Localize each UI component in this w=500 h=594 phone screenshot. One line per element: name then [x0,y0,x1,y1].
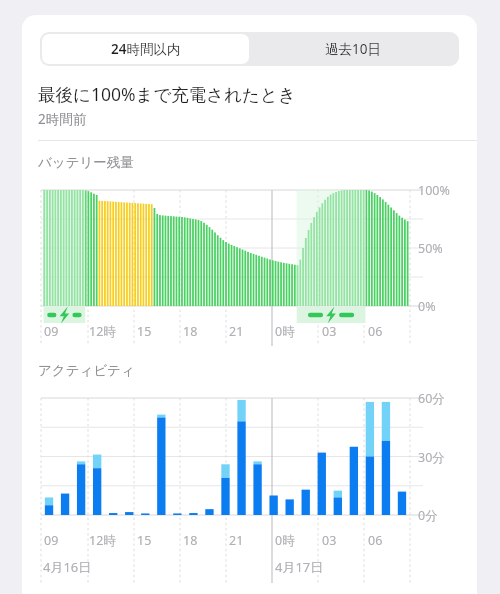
staticText: 最後に100%まで充電されたとき [38,82,296,106]
staticText: 60分 [418,390,445,407]
staticText: 03 [322,323,337,340]
staticText: 18 [183,323,198,340]
staticText: 12時 [89,532,116,549]
staticText: 15 [137,323,152,340]
staticText: アクティビティ [38,362,135,379]
button[interactable]: 過去10日 [249,34,457,64]
staticText: 0時 [275,532,295,549]
staticText: 30分 [418,449,445,466]
staticText: バッテリー残量 [38,154,134,171]
staticText: 15 [137,532,152,549]
button[interactable]: 24時間以内 [42,34,249,64]
staticText: 2時間前 [38,110,87,128]
staticText: 06 [368,532,383,549]
staticText: 06 [368,323,383,340]
staticText: 21 [229,532,244,549]
staticText: 0時 [275,323,295,340]
staticText: 18 [183,532,198,549]
staticText: 21 [229,323,244,340]
staticText: 過去10日 [325,40,381,58]
staticText: 0分 [418,507,438,524]
staticText: 03 [322,532,337,549]
staticText: 4月16日 [43,558,92,576]
staticText: 4月17日 [275,558,324,576]
staticText: 24時間以内 [111,40,181,58]
staticText: 09 [44,323,59,340]
staticText: 12時 [89,323,116,340]
staticText: 50% [418,240,443,257]
staticText: 100% [418,182,450,199]
staticText: 09 [44,532,59,549]
staticText: 0% [418,298,436,315]
